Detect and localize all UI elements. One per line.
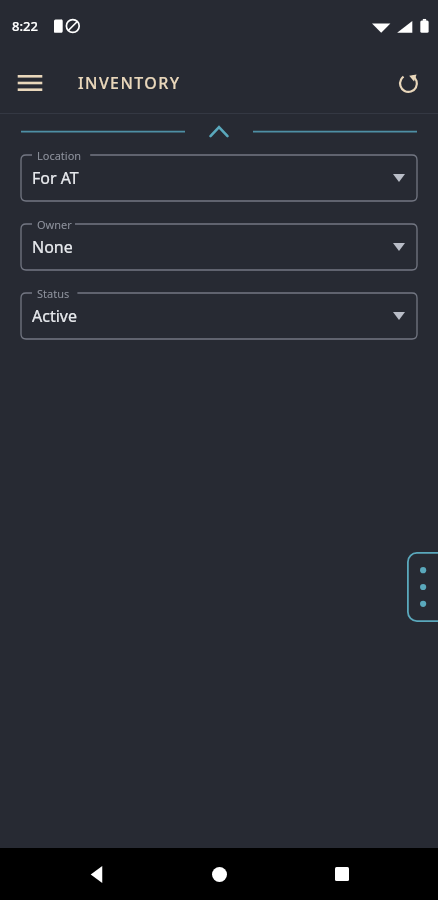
button[interactable]: Open navigation menu (10, 63, 50, 103)
staticText: INVENTORY (78, 72, 181, 94)
staticText: Status (37, 286, 70, 301)
button[interactable]: Back (71, 848, 123, 900)
staticText: Active (32, 305, 77, 327)
staticText: Location (37, 148, 82, 163)
button[interactable]: Recent apps (316, 848, 368, 900)
staticText: Owner (37, 217, 72, 232)
staticText: 8:22 (12, 17, 38, 35)
button[interactable]: Owner (21, 224, 417, 270)
button[interactable]: Home (193, 848, 245, 900)
staticText: None (32, 236, 73, 258)
staticText: For AT (32, 167, 79, 189)
button[interactable]: Refresh (386, 61, 430, 105)
button[interactable]: Status (21, 293, 417, 339)
button[interactable]: Location (21, 155, 417, 201)
button[interactable]: Collapse filters (0, 114, 438, 146)
button[interactable]: More options (407, 552, 438, 622)
